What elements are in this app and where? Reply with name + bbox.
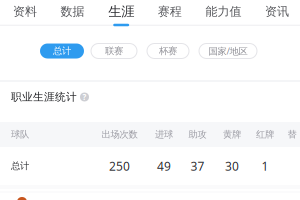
- button[interactable]: 能力值: [205, 0, 241, 27]
- button[interactable]: 国家/地区: [199, 43, 257, 58]
- button[interactable]: 资讯: [265, 0, 289, 27]
- staticText: 总计: [53, 45, 71, 57]
- staticText: 国家/地区: [208, 45, 247, 57]
- staticText: 生涯: [108, 3, 134, 20]
- button[interactable]: 数据: [61, 0, 85, 27]
- button[interactable]: 杯赛: [147, 43, 189, 58]
- staticText: 49: [157, 158, 171, 174]
- staticText: 联赛: [105, 45, 123, 57]
- staticText: 37: [190, 158, 204, 174]
- staticText: 红牌: [256, 129, 274, 140]
- staticText: 1: [261, 158, 268, 174]
- staticText: 黄牌: [223, 129, 241, 140]
- staticText: 总计: [11, 160, 29, 172]
- button[interactable]: 总计: [40, 43, 84, 58]
- staticText: 球队: [11, 129, 29, 140]
- staticText: 替: [287, 129, 296, 140]
- staticText: ?: [82, 92, 86, 102]
- staticText: 职业生涯统计: [11, 90, 77, 103]
- staticText: 资料: [13, 4, 37, 19]
- button[interactable]: Club: [0, 193, 300, 200]
- staticText: 赛程: [158, 4, 182, 19]
- button[interactable]: 赛程: [158, 0, 182, 27]
- staticText: 30: [225, 158, 239, 174]
- button[interactable]: 生涯: [108, 0, 134, 27]
- button[interactable]: 联赛: [91, 43, 137, 58]
- staticText: 助攻: [188, 129, 206, 140]
- button[interactable]: About career statistics: [80, 92, 89, 101]
- staticText: 杯赛: [159, 45, 177, 57]
- staticText: 资讯: [265, 4, 289, 19]
- staticText: 进球: [155, 129, 173, 140]
- button[interactable]: 资料: [13, 0, 37, 27]
- staticText: 出场次数: [101, 129, 137, 140]
- staticText: 250: [109, 158, 130, 174]
- staticText: 数据: [61, 4, 85, 19]
- staticText: 能力值: [205, 4, 241, 19]
